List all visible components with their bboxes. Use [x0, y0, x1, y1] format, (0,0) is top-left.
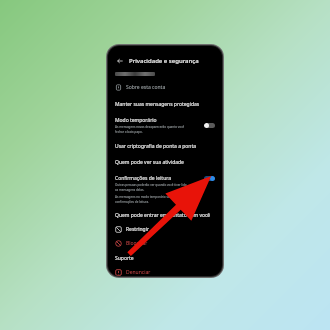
button[interactable]: Restringir [115, 226, 215, 233]
button[interactable]: Modo temporário [115, 117, 215, 134]
button[interactable] [204, 176, 215, 181]
button[interactable]: Usar criptografia de ponta a ponta [115, 143, 215, 150]
staticText: Outras pessoas poderão ver quando você t… [115, 183, 187, 192]
button[interactable] [204, 123, 215, 128]
button[interactable]: Denunciar [115, 269, 215, 276]
staticText: Modo temporário [115, 117, 157, 124]
staticText: Suporte [115, 255, 134, 262]
staticText: Restringir [126, 226, 150, 233]
button[interactable]: Sobre esta conta [115, 84, 215, 91]
staticText: Bloquear [126, 240, 148, 247]
button[interactable]: Bloquear [115, 240, 215, 247]
staticText: Denunciar [126, 269, 151, 276]
button[interactable]: Quem pode ver sua atividade [115, 159, 215, 166]
button[interactable]: Voltar [115, 56, 124, 65]
staticText: As mensagens no modo temporário sempre c… [115, 195, 178, 204]
staticText: Quem pode entrar em contato com você [115, 212, 211, 219]
staticText: As mensagens novas desaparecerão quanto … [115, 125, 185, 134]
staticText: Privacidade e segurança [129, 57, 199, 65]
button[interactable]: Confirmações de leitura [115, 175, 215, 204]
staticText: Sobre esta conta [126, 84, 166, 91]
staticText: Confirmações de leitura [115, 175, 172, 182]
button[interactable]: Manter suas mensagens protegidas [115, 101, 215, 108]
